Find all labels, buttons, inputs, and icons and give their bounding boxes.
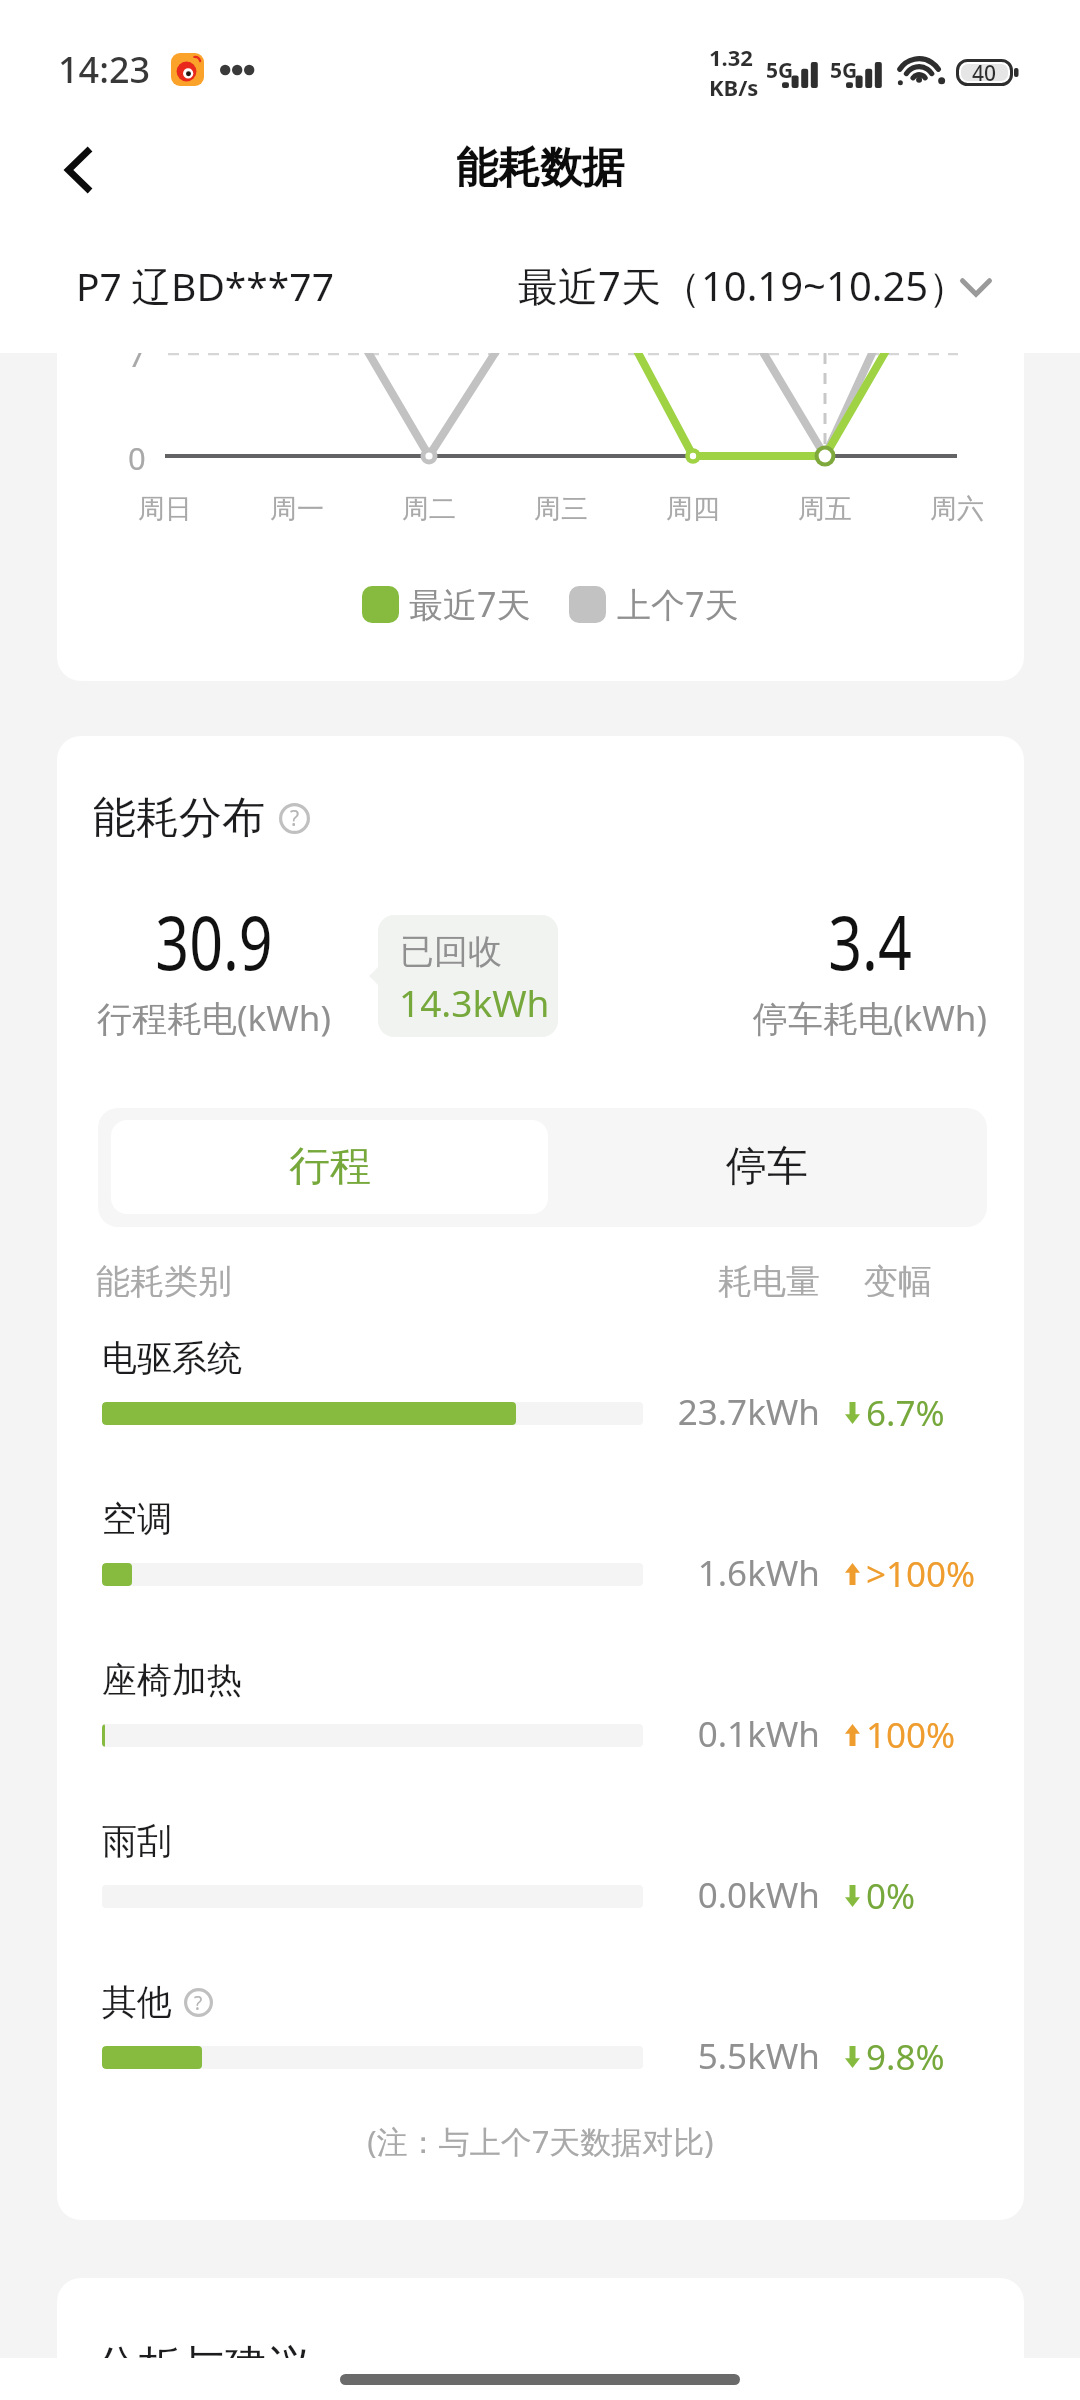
staticText: 3.4: [790, 891, 950, 992]
staticText: 最近7天: [409, 581, 531, 627]
staticText: ?: [290, 804, 300, 833]
staticText: 14:23: [58, 45, 151, 94]
staticText: 雨刮: [102, 1819, 172, 1863]
button[interactable]: 停车: [548, 1120, 985, 1214]
staticText: 0.1kWh: [620, 1710, 820, 1758]
button[interactable]: 能耗分布: [93, 791, 310, 845]
staticText: 电驱系统: [102, 1336, 242, 1380]
staticText: 空调: [102, 1497, 172, 1541]
staticText: 1.6kWh: [620, 1549, 820, 1597]
staticText: 5G: [766, 56, 794, 85]
staticText: 座椅加热: [102, 1658, 242, 1702]
staticText: 6.7%: [866, 1389, 945, 1437]
staticText: 能耗数据: [456, 142, 624, 195]
staticText: 能耗分布: [93, 791, 265, 845]
staticText: 周五: [765, 492, 885, 526]
staticText: KB/s: [709, 72, 759, 102]
staticText: 5.5kWh: [620, 2032, 820, 2080]
staticText: 周一: [237, 492, 357, 526]
staticText: P7 辽BD***77: [76, 259, 334, 312]
staticText: 周四: [633, 492, 753, 526]
staticText: 变幅: [757, 1260, 932, 1303]
staticText: 5G: [830, 56, 858, 85]
staticText: 23.7kWh: [620, 1388, 820, 1436]
staticText: 40: [972, 59, 997, 86]
button[interactable]: 最近7天（10.19~10.25）: [480, 237, 1000, 333]
staticText: 周三: [501, 492, 621, 526]
staticText: (注：与上个7天数据对比): [57, 2120, 1024, 2162]
button[interactable]: Back: [39, 131, 117, 209]
staticText: >100%: [866, 1550, 976, 1598]
staticText: ?: [194, 1990, 203, 2016]
staticText: 7: [128, 353, 146, 376]
staticText: 100%: [866, 1711, 956, 1759]
staticText: 行程耗电(kWh): [64, 994, 364, 1042]
staticText: 耗电量: [657, 1260, 820, 1303]
staticText: 9.8%: [866, 2033, 945, 2081]
staticText: 0: [128, 437, 146, 479]
staticText: 14.3kWh: [399, 977, 550, 1027]
staticText: 停车耗电(kWh): [720, 994, 1020, 1042]
staticText: 1.32: [709, 42, 753, 72]
staticText: 分析与建议: [95, 2340, 310, 2358]
staticText: 上个7天: [617, 581, 739, 627]
staticText: 周二: [369, 492, 489, 526]
staticText: 能耗类别: [96, 1260, 232, 1303]
staticText: 停车: [726, 1141, 808, 1193]
staticText: 周日: [105, 492, 225, 526]
staticText: 0%: [866, 1872, 916, 1920]
staticText: 已回收: [400, 930, 502, 973]
staticText: 其他: [102, 1980, 172, 2024]
staticText: 最近7天（10.19~10.25）: [518, 258, 969, 313]
button[interactable]: 行程: [111, 1120, 548, 1214]
staticText: 行程: [289, 1141, 371, 1193]
staticText: 周六: [897, 492, 1017, 526]
staticText: 0.0kWh: [620, 1871, 820, 1919]
staticText: 30.9: [134, 891, 294, 992]
